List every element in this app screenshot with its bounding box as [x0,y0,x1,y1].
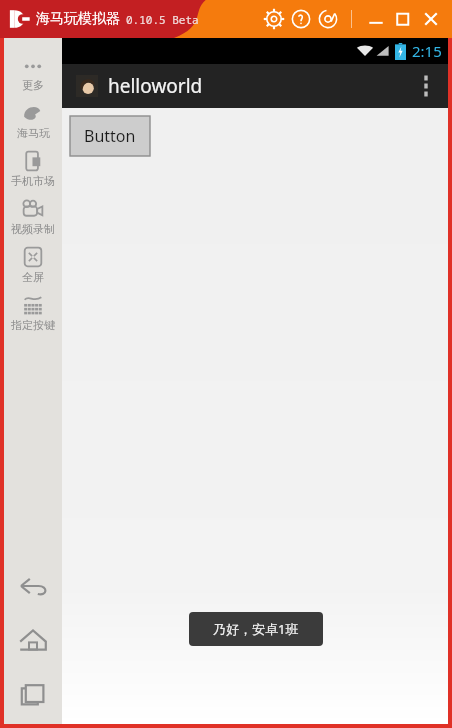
button[interactable]: More [4,50,62,98]
button[interactable]: Record video [4,194,62,242]
button[interactable]: Back [13,566,53,606]
staticText: 指定按键 [11,318,55,332]
staticText: 0.10.5 Beta [126,12,199,27]
staticText: 更多 [22,78,44,92]
staticText: Button [84,125,136,147]
other: App market [20,148,46,174]
staticText: 海马玩 [17,126,50,140]
staticText: 视频录制 [11,222,55,236]
button[interactable]: Fullscreen [4,242,62,290]
other: Haimawan [20,100,46,126]
staticText: 海马玩模拟器 [36,10,120,28]
button[interactable]: Maximize [391,7,415,31]
other: Record video [20,196,46,222]
staticText: 手机市场 [11,174,55,188]
other: Key mapping [20,292,46,318]
button[interactable]: Button [70,116,150,156]
staticText: 全屏 [22,270,44,284]
button[interactable]: Home [13,620,53,660]
button[interactable]: Haimawan [4,98,62,146]
staticText: 乃好，安卓1班 [213,620,299,638]
button[interactable]: Minimize [364,7,388,31]
staticText: 2:15 [412,41,442,61]
button[interactable]: Recents [13,674,53,714]
button[interactable]: Settings [262,7,286,31]
button[interactable]: App market [4,146,62,194]
other: More [20,52,46,78]
button[interactable]: More options [404,64,448,108]
button[interactable]: Close [419,7,443,31]
staticText: helloworld [108,73,203,99]
other: Fullscreen [20,244,46,270]
button[interactable]: Key mapping [4,290,62,338]
button[interactable]: Help [289,7,313,31]
button[interactable]: Account [316,7,340,31]
